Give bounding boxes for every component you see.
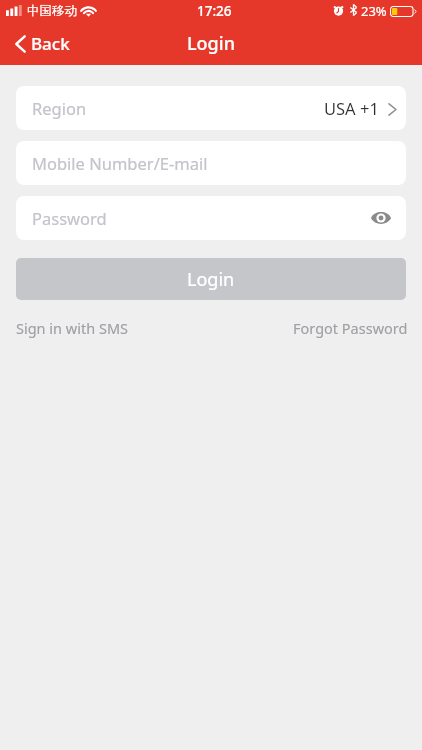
- staticText: 17:26: [197, 2, 232, 20]
- staticText: 中国移动: [27, 3, 77, 19]
- button[interactable]: Sign in with SMS: [16, 318, 128, 338]
- button[interactable]: Mobile Number/E-mail: [16, 141, 406, 185]
- staticText: Login: [187, 267, 235, 292]
- staticText: 23%: [361, 2, 387, 20]
- button[interactable]: Password: [16, 196, 406, 240]
- staticText: Login: [187, 31, 235, 56]
- button[interactable]: Login: [16, 258, 406, 300]
- staticText: Back: [31, 32, 70, 55]
- staticText: Region: [32, 97, 87, 119]
- button[interactable]: Region: [16, 86, 406, 130]
- staticText: USA +1: [324, 97, 379, 119]
- button[interactable]: Show password: [368, 204, 394, 232]
- staticText: Password: [32, 207, 107, 229]
- staticText: Mobile Number/E-mail: [32, 152, 208, 174]
- button[interactable]: Forgot Password: [293, 318, 408, 338]
- button[interactable]: Back: [0, 26, 80, 61]
